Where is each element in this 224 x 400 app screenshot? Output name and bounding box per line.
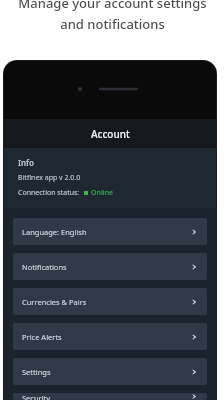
button[interactable]: Price Alerts <box>13 323 207 350</box>
button[interactable]: Settings <box>13 358 207 385</box>
button[interactable]: Notifications <box>13 253 207 280</box>
staticText: Online <box>91 188 114 198</box>
staticText: Price Alerts <box>22 332 190 342</box>
staticText: Info <box>18 157 34 168</box>
staticText: Notifications <box>22 262 190 272</box>
staticText: Currencies & Pairs <box>22 297 190 307</box>
staticText: Language: English <box>22 227 190 237</box>
staticText: Security <box>22 393 190 400</box>
staticText: Manage your account settings <box>18 0 207 12</box>
staticText: Bitfinex app v 2.0.0 <box>18 173 81 183</box>
staticText: Account <box>91 127 130 141</box>
button[interactable]: Currencies & Pairs <box>13 288 207 315</box>
staticText: Connection status: <box>18 188 80 198</box>
staticText: and notifications <box>60 15 165 33</box>
button[interactable]: Language: English <box>13 218 207 245</box>
staticText: Settings <box>22 367 190 377</box>
button[interactable]: Security <box>13 393 207 400</box>
